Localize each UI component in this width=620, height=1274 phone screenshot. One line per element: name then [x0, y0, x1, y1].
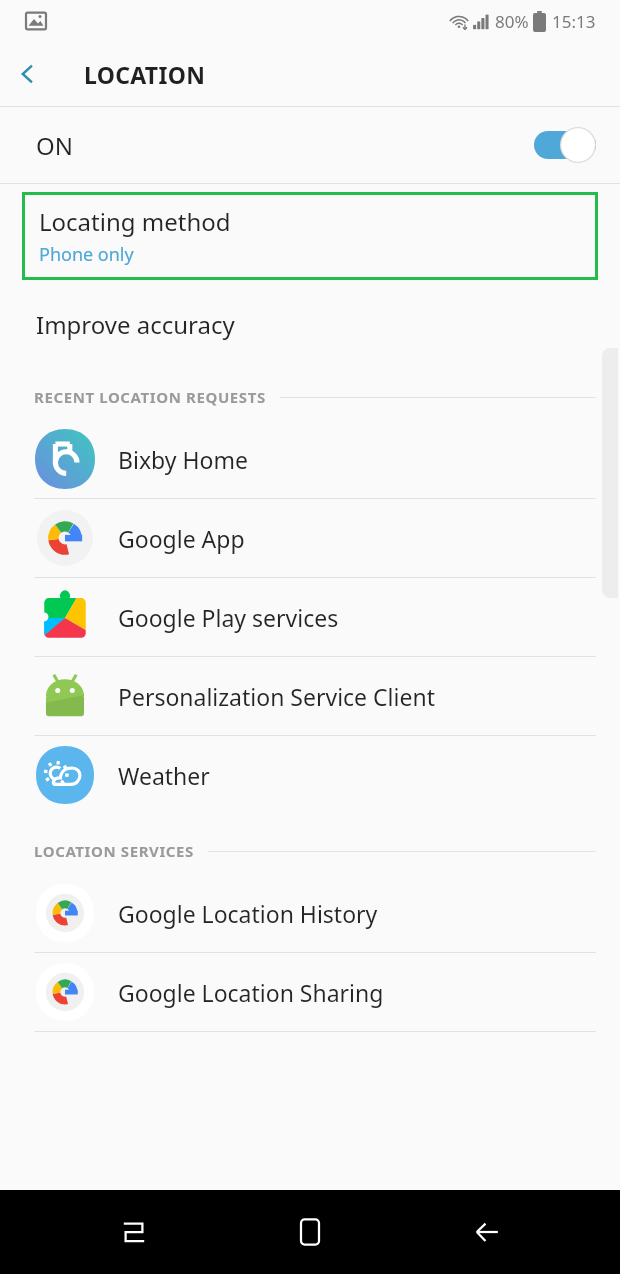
button[interactable]: ON [0, 107, 620, 183]
staticText: Phone only [39, 242, 134, 267]
staticText: 15:13 [552, 10, 596, 33]
staticText: Google Play services [118, 602, 339, 633]
staticText: Improve accuracy [36, 308, 235, 341]
button[interactable]: Recents [91, 1190, 177, 1274]
staticText: RECENT LOCATION REQUESTS [34, 387, 266, 407]
button[interactable]: Improve accuracy [0, 292, 620, 356]
other: Location toggle [534, 127, 596, 163]
button[interactable]: Bixby Home [0, 420, 620, 498]
button[interactable]: Google Play services [0, 578, 620, 656]
button[interactable]: Google Location History [0, 874, 620, 952]
staticText: Bixby Home [118, 444, 248, 475]
staticText: Personalization Service Client [118, 681, 435, 712]
staticText: LOCATION SERVICES [34, 841, 194, 861]
button[interactable]: Personalization Service Client [0, 657, 620, 735]
staticText: Google App [118, 523, 245, 554]
staticText: Google Location Sharing [118, 977, 384, 1008]
button[interactable]: Google App [0, 499, 620, 577]
button[interactable]: Back [0, 46, 56, 102]
staticText: LOCATION [84, 59, 206, 90]
button[interactable]: Google Location Sharing [0, 953, 620, 1031]
button[interactable]: Locating method [25, 195, 595, 277]
button[interactable]: Home [267, 1190, 353, 1274]
staticText: 80% [495, 10, 529, 33]
staticText: Locating method [39, 205, 231, 238]
staticText: Google Location History [118, 898, 378, 929]
staticText: Weather [118, 760, 210, 791]
button[interactable]: Weather [0, 736, 620, 814]
button[interactable]: Back [444, 1190, 530, 1274]
staticText: ON [36, 129, 73, 162]
